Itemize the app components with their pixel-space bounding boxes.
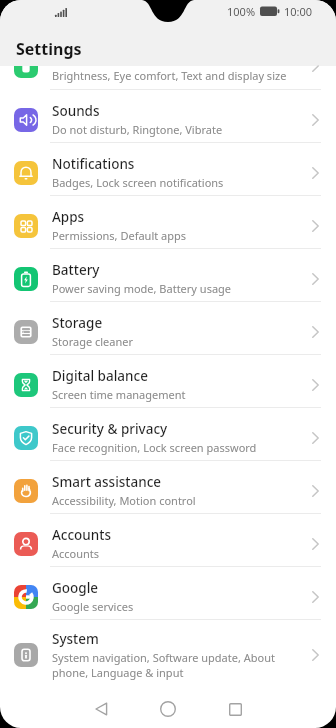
- staticText: Settings: [16, 38, 82, 60]
- staticText: Face recognition, Lock screen password: [52, 440, 257, 455]
- staticText: Google services: [52, 599, 134, 614]
- staticText: Screen time management: [52, 387, 186, 402]
- staticText: Notifications: [52, 155, 135, 173]
- button[interactable]: System: [0, 620, 336, 684]
- staticText: Sounds: [52, 102, 100, 120]
- staticText: 10:00: [284, 4, 313, 19]
- staticText: 100%: [227, 4, 256, 19]
- staticText: System: [52, 630, 99, 648]
- button[interactable]: [215, 694, 255, 724]
- staticText: Battery: [52, 261, 100, 279]
- staticText: Storage: [52, 314, 103, 332]
- staticText: System navigation, Software update, Abou…: [52, 650, 306, 680]
- button[interactable]: Apps: [0, 196, 336, 249]
- button[interactable]: [81, 694, 121, 724]
- staticText: Accessibility, Motion control: [52, 493, 196, 508]
- button[interactable]: Accounts: [0, 514, 336, 567]
- staticText: Security & privacy: [52, 420, 168, 438]
- button[interactable]: Google: [0, 567, 336, 620]
- staticText: Do not disturb, Ringtone, Vibrate: [52, 122, 223, 137]
- staticText: Accounts: [52, 526, 112, 544]
- staticText: Digital balance: [52, 367, 148, 385]
- button[interactable]: Sounds: [0, 90, 336, 143]
- button[interactable]: Storage: [0, 302, 336, 355]
- button[interactable]: Notifications: [0, 143, 336, 196]
- staticText: Smart assistance: [52, 473, 162, 491]
- button[interactable]: Battery: [0, 249, 336, 302]
- staticText: Badges, Lock screen notifications: [52, 175, 224, 190]
- button[interactable]: Brightness, Eye comfort, Text and displa…: [0, 66, 336, 90]
- button[interactable]: [148, 694, 188, 724]
- staticText: Permissions, Default apps: [52, 228, 187, 243]
- staticText: Accounts: [52, 546, 100, 561]
- staticText: Power saving mode, Battery usage: [52, 281, 232, 296]
- staticText: Brightness, Eye comfort, Text and displa…: [52, 68, 287, 83]
- button[interactable]: Security & privacy: [0, 408, 336, 461]
- staticText: Apps: [52, 208, 85, 226]
- staticText: Storage cleaner: [52, 334, 134, 349]
- staticText: Google: [52, 579, 99, 597]
- button[interactable]: Digital balance: [0, 355, 336, 408]
- button[interactable]: Smart assistance: [0, 461, 336, 514]
